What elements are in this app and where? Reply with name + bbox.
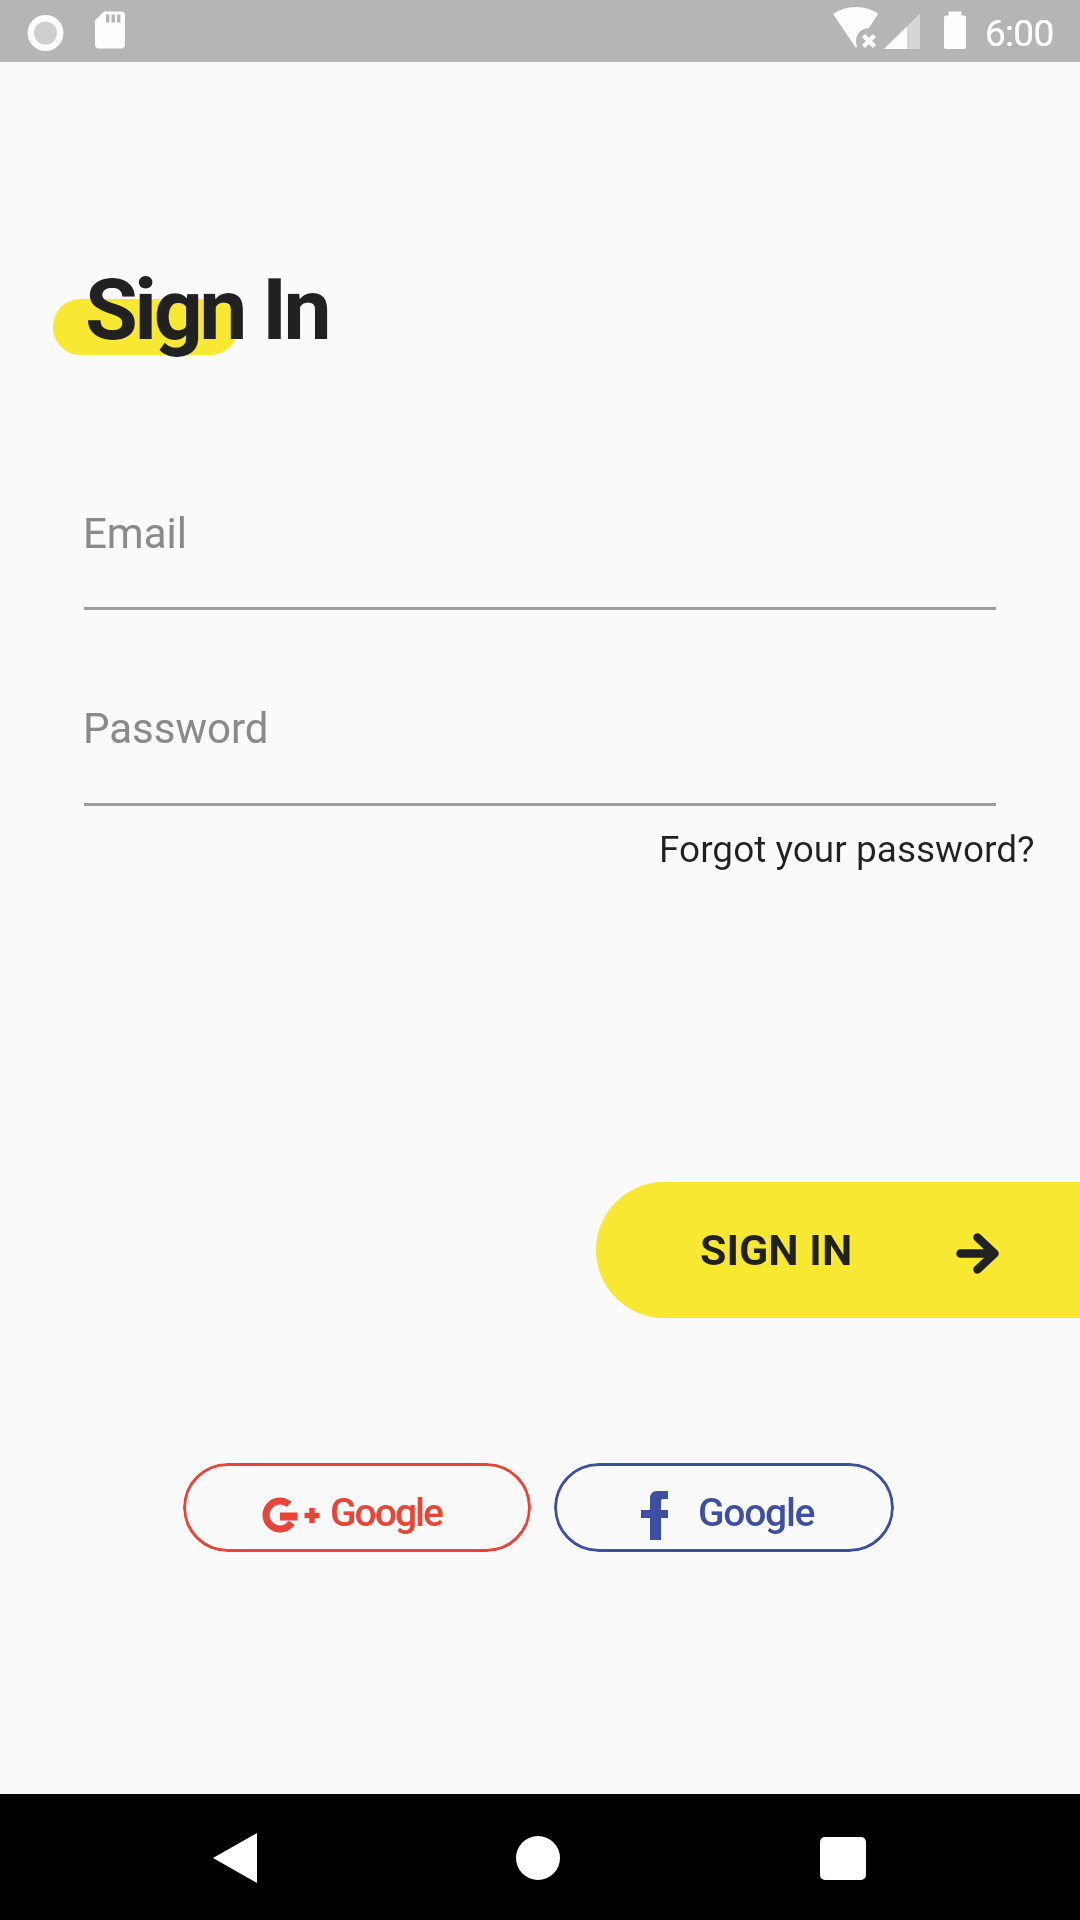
button[interactable]: Email [84,480,996,610]
button[interactable]: Forgot your password? [659,828,1035,871]
staticText: Sign In [85,259,329,360]
button[interactable]: Password [84,676,996,806]
staticText: Email [83,509,187,558]
button[interactable] [797,1826,889,1888]
button[interactable]: Google [183,1463,531,1552]
staticText: SIGN IN [700,1225,853,1275]
button[interactable] [190,1826,282,1888]
button[interactable]: Google [554,1463,894,1552]
button[interactable] [492,1826,584,1888]
staticText: Google [330,1490,442,1536]
staticText: Password [83,704,269,753]
staticText: Google [698,1490,815,1536]
staticText: 6:00 [985,12,1054,55]
button[interactable]: SIGN IN [596,1182,1080,1318]
